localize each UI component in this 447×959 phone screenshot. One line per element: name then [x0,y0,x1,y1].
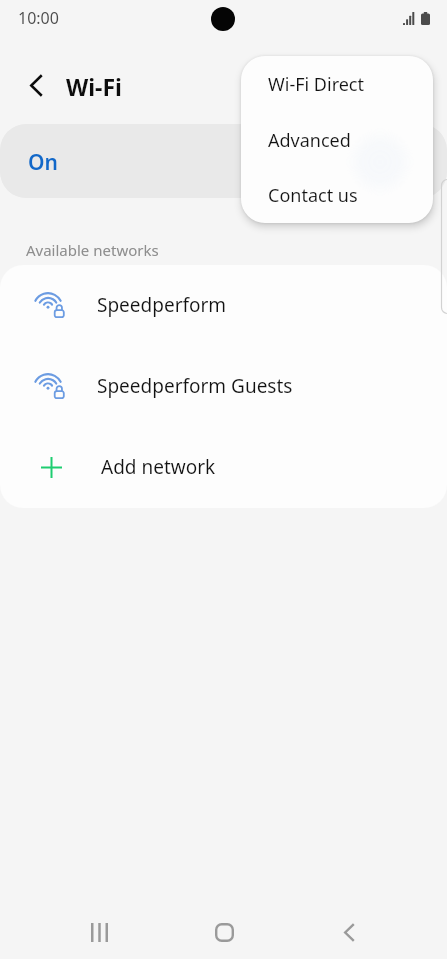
button[interactable]: Advanced [241,112,433,168]
staticText: Available networks [26,240,159,260]
staticText: Wi-Fi Direct [268,72,364,97]
staticText: Advanced [268,128,351,153]
button[interactable]: On [0,124,447,198]
button[interactable]: Back [324,907,374,957]
staticText: Speedperform Guests [97,373,293,399]
button[interactable]: Speedperform Guests [0,346,447,427]
staticText: Speedperform [97,292,227,318]
button[interactable]: Home [199,907,249,957]
staticText: Wi-Fi [66,71,122,102]
button[interactable]: Add network [0,427,447,508]
staticText: 10:00 [18,7,59,29]
staticText: Add network [101,454,216,480]
button[interactable]: Contact us [241,168,433,223]
button[interactable]: Recent apps [74,907,124,957]
staticText: Contact us [268,183,358,208]
staticText: On [28,148,58,177]
button[interactable]: Wi-Fi Direct [241,56,433,112]
button[interactable]: Speedperform [0,265,447,346]
button[interactable]: Navigate up [14,63,58,107]
